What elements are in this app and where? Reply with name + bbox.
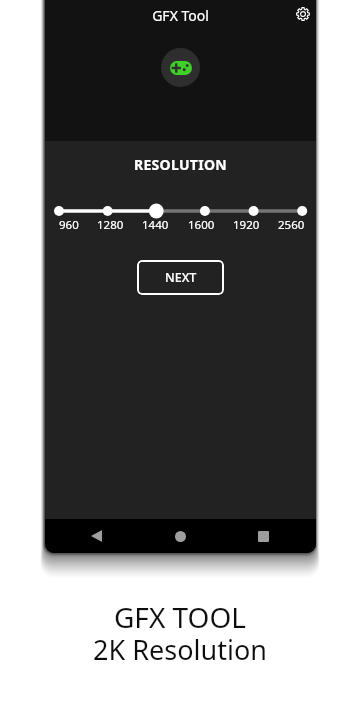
staticText: 1440 — [142, 217, 169, 233]
staticText: 1600 — [188, 217, 215, 233]
button[interactable]: NEXT — [137, 260, 224, 295]
staticText: 2K Resolution — [0, 631, 360, 668]
button[interactable]: Settings — [290, 1, 316, 27]
staticText: RESOLUTION — [45, 155, 316, 174]
staticText: 2560 — [278, 217, 305, 233]
staticText: GFX TOOL — [0, 598, 360, 636]
button[interactable]: Back — [81, 521, 111, 551]
staticText: GFX Tool — [45, 6, 316, 25]
button[interactable]: Recent apps — [248, 521, 278, 551]
button[interactable]: Home — [165, 521, 195, 551]
staticText: 1280 — [97, 217, 124, 233]
staticText: 960 — [59, 217, 79, 233]
staticText: 1920 — [233, 217, 260, 233]
button[interactable]: Select game — [161, 48, 200, 87]
staticText: NEXT — [165, 269, 197, 286]
